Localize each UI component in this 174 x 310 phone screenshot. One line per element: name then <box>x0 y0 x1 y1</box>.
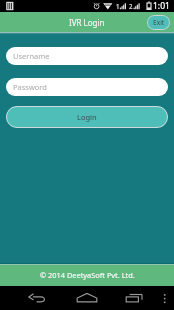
staticText: 2 <box>129 2 133 10</box>
button[interactable]: Password <box>6 78 168 96</box>
button[interactable]: Home <box>62 286 112 310</box>
staticText: Password <box>13 82 47 92</box>
staticText: IVR Login <box>69 17 105 28</box>
staticText: 1:01 <box>153 0 170 12</box>
staticText: Exit <box>153 18 165 27</box>
button[interactable]: Back <box>0 286 62 310</box>
button[interactable]: More options <box>154 286 174 310</box>
staticText: Login <box>77 112 97 122</box>
staticText: Username <box>13 51 50 61</box>
button[interactable]: Recent apps <box>112 286 154 310</box>
button[interactable]: Exit <box>147 15 170 30</box>
staticText: 1 <box>116 2 120 10</box>
button[interactable]: Login <box>6 106 168 128</box>
staticText: © 2014 DeetyaSoft Pvt. Ltd. <box>40 270 135 280</box>
button[interactable]: Username <box>6 47 168 65</box>
